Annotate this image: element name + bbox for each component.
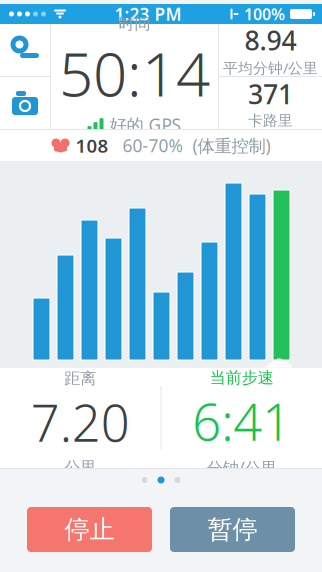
button[interactable]: Settings (0, 24, 50, 76)
staticText: 6:41 (192, 388, 291, 455)
button[interactable]: 停止 (27, 507, 152, 552)
staticText: 50:14 (59, 33, 210, 113)
staticText: 108 (75, 133, 108, 158)
staticText: 公里 (64, 458, 96, 477)
staticText: 暂停 (207, 514, 257, 545)
staticText: 时间 (118, 14, 150, 33)
button[interactable]: 暂停 (170, 507, 295, 552)
staticText: 100% (244, 3, 285, 25)
staticText: 分钟/公里 (207, 457, 277, 478)
staticText: 60-70% (体重控制) (122, 134, 270, 157)
button[interactable]: Camera (0, 77, 50, 129)
staticText: 平均分钟/公里 (223, 58, 318, 77)
staticText: 1:23 PM (114, 2, 181, 25)
staticText: 当前步速 (210, 368, 274, 388)
staticText: 卡路里 (248, 112, 293, 130)
staticText: 好的 GPS (109, 113, 181, 136)
staticText: 停止 (64, 514, 114, 545)
staticText: 371 (248, 76, 293, 112)
staticText: 8.94 (244, 23, 296, 58)
staticText: 距离 (64, 369, 96, 388)
staticText: 7.20 (31, 388, 130, 456)
